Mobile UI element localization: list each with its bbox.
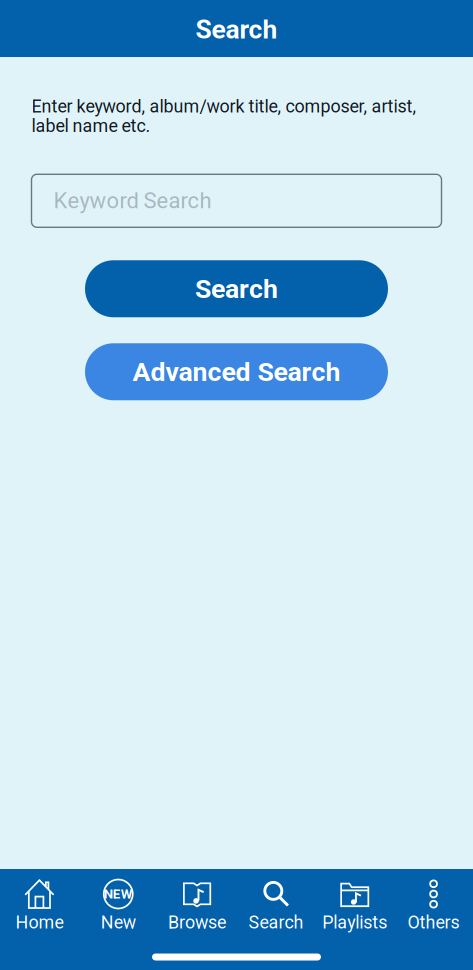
staticText: Others	[408, 912, 460, 933]
button[interactable]: NEW	[79, 869, 158, 941]
staticText: Home	[15, 912, 63, 933]
staticText: Advanced Search	[132, 356, 340, 387]
staticText: Keyword Search	[53, 188, 211, 214]
staticText: New	[101, 912, 136, 933]
button[interactable]: Playlists	[315, 869, 394, 941]
staticText: Enter keyword, album/work title, compose…	[31, 96, 416, 136]
staticText: Playlists	[322, 912, 387, 933]
button[interactable]: Browse	[158, 869, 236, 941]
staticText: Browse	[168, 912, 226, 933]
staticText: Search	[248, 912, 303, 933]
button[interactable]: Home	[0, 869, 79, 941]
button[interactable]: Others	[394, 869, 473, 941]
button[interactable]: Search	[236, 869, 315, 941]
button[interactable]: Search	[85, 260, 388, 317]
staticText: NEW	[104, 886, 133, 902]
staticText: Search	[195, 14, 277, 45]
button[interactable]: Advanced Search	[85, 343, 388, 400]
staticText: Search	[195, 273, 278, 304]
